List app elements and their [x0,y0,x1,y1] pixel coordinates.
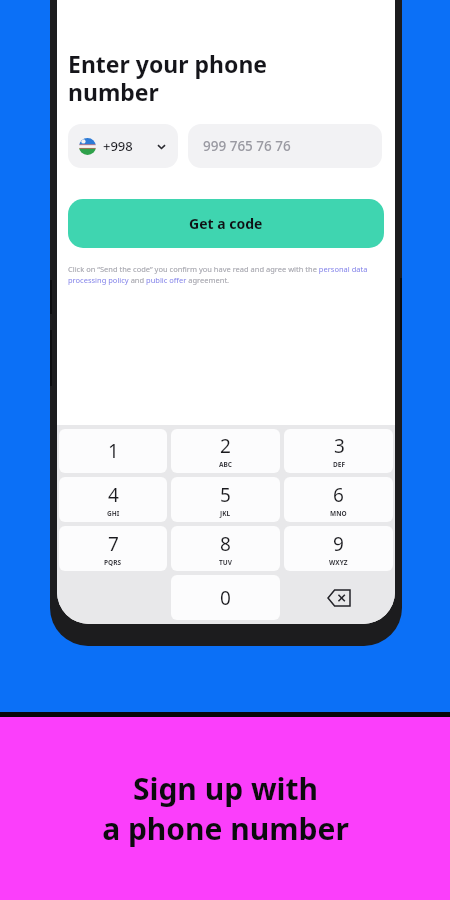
button[interactable]: 7 [59,526,167,571]
staticText: 0 [220,585,231,611]
staticText: Click on “Send the code” you confirm you… [68,264,382,285]
button[interactable]: 3 [284,429,393,473]
button[interactable]: 0 [171,575,280,620]
staticText: 8 [220,531,231,557]
button[interactable]: 999 765 76 76 [188,124,382,168]
button[interactable]: 4 [59,477,167,522]
staticText: ABC [219,460,232,469]
staticText: 9 [333,531,344,557]
button[interactable]: 5 [171,477,280,522]
staticText: PQRS [104,558,122,567]
button[interactable]: +998 [68,124,178,168]
staticText: 7 [108,531,119,557]
staticText: MNO [330,509,347,518]
button[interactable]: 8 [171,526,280,571]
staticText: WXYZ [329,558,348,567]
staticText: 5 [220,482,231,508]
staticText: TUV [219,558,232,567]
button[interactable]: 2 [171,429,280,473]
button[interactable]: 1 [59,429,167,473]
staticText: +998 [103,137,133,155]
staticText: 1 [108,438,119,464]
staticText: DEF [333,460,345,469]
staticText: 999 765 76 76 [203,137,291,155]
staticText: Sign up with a phone number [102,768,349,849]
button[interactable]: 9 [284,526,393,571]
button[interactable]: 6 [284,477,393,522]
button[interactable]: Backspace [282,573,395,622]
button[interactable]: Get a code [68,199,384,248]
staticText: 2 [220,433,231,459]
staticText: GHI [107,509,120,518]
staticText: Get a code [189,214,263,233]
staticText: 3 [334,433,345,459]
staticText: 4 [108,482,119,508]
staticText: Enter your phone number [68,48,268,108]
staticText: 6 [333,482,344,508]
staticText: JKL [220,509,231,518]
